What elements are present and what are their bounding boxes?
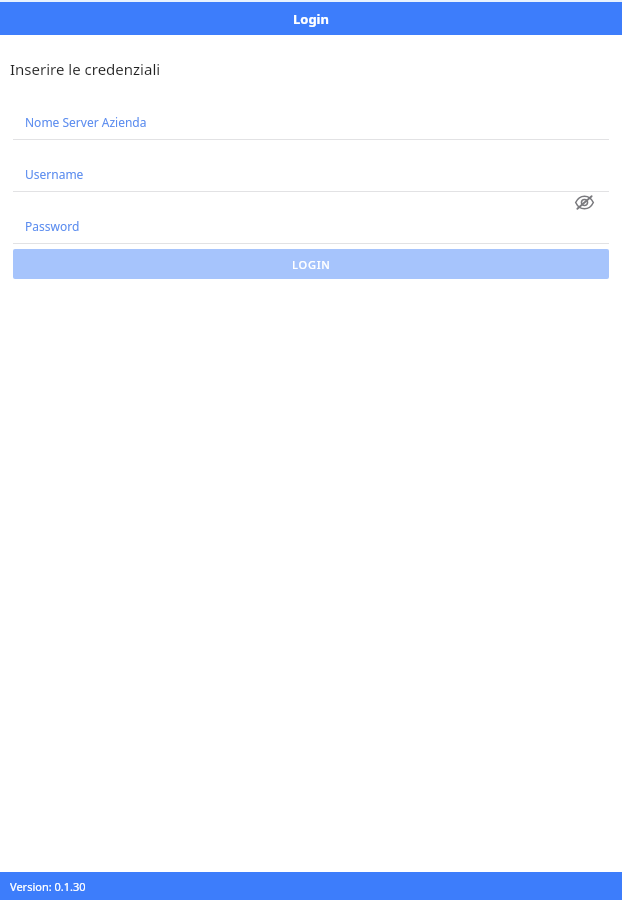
staticText: Username <box>25 166 84 182</box>
staticText: Version: 0.1.30 <box>10 879 86 894</box>
staticText: Nome Server Azienda <box>25 114 147 130</box>
button[interactable]: Password <box>0 210 622 244</box>
staticText: LOGIN <box>292 257 331 272</box>
button[interactable]: Username <box>0 158 622 192</box>
staticText: Password <box>25 218 80 234</box>
staticText: Login <box>293 10 329 28</box>
button[interactable]: LOGIN <box>13 249 609 279</box>
button[interactable]: Nome Server Azienda <box>0 106 622 140</box>
button[interactable]: Mostra password <box>571 189 597 215</box>
staticText: Inserire le credenziali <box>10 59 161 79</box>
